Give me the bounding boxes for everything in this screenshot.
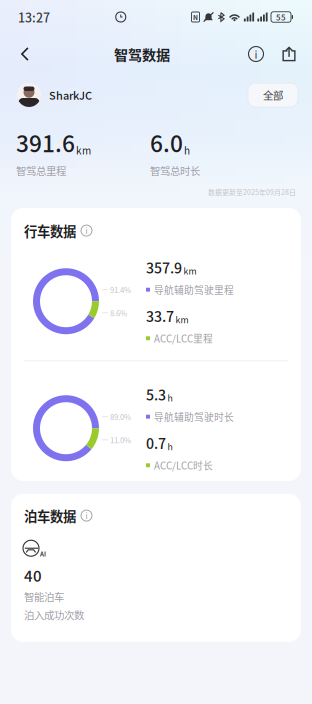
staticText: 6.0: [150, 126, 183, 159]
staticText: 智能泊车: [24, 589, 64, 604]
staticText: 5.3: [146, 384, 166, 405]
staticText: 泊车数据: [24, 506, 76, 525]
staticText: ACC/LCC时长: [154, 458, 213, 472]
staticText: i: [254, 46, 257, 62]
staticText: 357.9: [146, 257, 182, 278]
staticText: N: [193, 12, 198, 22]
staticText: 55: [276, 11, 286, 23]
staticText: SharkJC: [49, 87, 92, 103]
staticText: km: [183, 264, 196, 277]
staticText: km: [175, 313, 188, 326]
staticText: 智驾总时长: [150, 163, 200, 178]
staticText: 行车数据: [24, 221, 76, 240]
button[interactable]: Info: [240, 34, 272, 74]
staticText: 导航辅助驾驶时长: [154, 410, 234, 424]
staticText: 391.6: [16, 126, 75, 159]
button[interactable]: Share: [272, 34, 306, 74]
staticText: 泊入成功次数: [24, 607, 84, 622]
staticText: h: [167, 440, 172, 453]
staticText: AI: [40, 549, 46, 558]
staticText: 全部: [263, 87, 283, 103]
staticText: 导航辅助驾驶里程: [154, 283, 234, 297]
staticText: 89.0%: [110, 411, 131, 422]
staticText: ACC/LCC里程: [154, 331, 213, 345]
staticText: 数据更新至2025年09月28日: [208, 187, 296, 197]
staticText: 13:27: [18, 8, 50, 26]
staticText: 11.0%: [110, 434, 131, 445]
staticText: i: [85, 510, 87, 521]
staticText: 33.7: [146, 306, 174, 326]
staticText: 智驾总里程: [16, 163, 66, 178]
staticText: 40: [24, 564, 42, 586]
staticText: 8.6%: [110, 307, 127, 318]
staticText: h: [167, 391, 172, 404]
button[interactable]: Back: [6, 34, 44, 74]
button[interactable]: 全部: [248, 83, 298, 107]
staticText: h: [184, 143, 190, 157]
staticText: 智驾数据: [114, 44, 170, 64]
staticText: 91.4%: [110, 284, 131, 295]
staticText: 0.7: [146, 433, 166, 453]
staticText: i: [85, 225, 87, 236]
staticText: km: [76, 143, 91, 157]
